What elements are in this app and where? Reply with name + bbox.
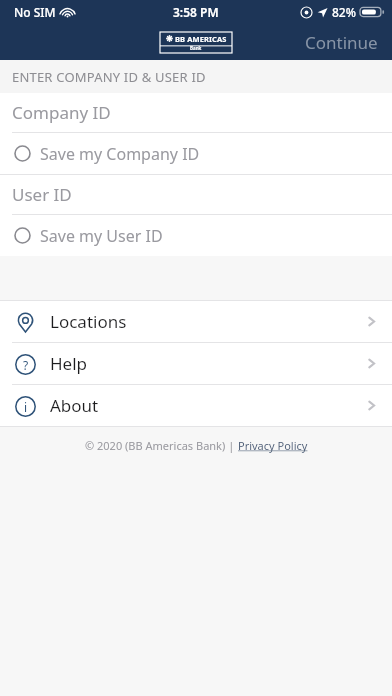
staticText: 82%: [332, 4, 356, 20]
button[interactable]: BB Americas Bank: [160, 32, 232, 53]
staticText: © 2020 (BB Americas Bank) |: [85, 438, 238, 453]
staticText: Continue: [305, 31, 378, 54]
button[interactable]: User ID: [0, 175, 392, 214]
staticText: ENTER COMPANY ID & USER ID: [12, 68, 206, 86]
staticText: Privacy Policy: [238, 438, 308, 453]
button[interactable]: Continue: [291, 27, 392, 58]
button[interactable]: i: [0, 385, 392, 426]
button[interactable]: Privacy Policy: [238, 438, 308, 453]
staticText: No SIM: [14, 4, 56, 20]
button[interactable]: Save my Company ID: [0, 133, 392, 174]
staticText: Help: [50, 352, 88, 375]
staticText: About: [50, 394, 99, 417]
staticText: User ID: [12, 183, 72, 206]
button[interactable]: ?: [0, 343, 392, 384]
staticText: Save my User ID: [40, 225, 163, 247]
staticText: Bank: [190, 45, 202, 51]
staticText: Save my Company ID: [40, 143, 200, 165]
button[interactable]: Locations: [0, 301, 392, 342]
staticText: 3:58 PM: [173, 4, 219, 20]
staticText: Locations: [50, 310, 127, 333]
staticText: Company ID: [12, 101, 111, 124]
button[interactable]: Company ID: [0, 93, 392, 132]
button[interactable]: Save my User ID: [0, 215, 392, 256]
staticText: BB AMERICAS: [175, 34, 227, 44]
staticText: i: [24, 399, 28, 415]
staticText: ?: [23, 357, 29, 373]
